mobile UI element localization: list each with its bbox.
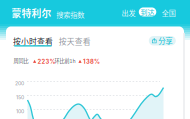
button[interactable]: 全国 (160, 8, 177, 18)
staticText: 全国 (162, 8, 176, 18)
button[interactable]: 出发 (120, 8, 137, 18)
button[interactable]: 按小时查看 (11, 34, 55, 47)
staticText: 出发 (122, 7, 136, 18)
staticText: 蒙特利尔 (11, 6, 51, 20)
staticText: 周同比 (14, 57, 29, 64)
staticText: 138% (83, 58, 100, 65)
button[interactable]: 按天查看 (57, 34, 93, 47)
button[interactable]: 到达 (139, 7, 156, 16)
staticText: 150 (16, 94, 24, 100)
button[interactable]: 分享 (149, 36, 176, 45)
staticText: 搜索指数 (56, 9, 84, 20)
staticText: 按小时查看 (13, 35, 53, 47)
staticText: 环比前1h (54, 57, 75, 64)
staticText: 100 (16, 108, 24, 114)
staticText: 223% (37, 58, 55, 65)
staticText: 到达 (141, 7, 155, 17)
staticText: 分享 (158, 35, 172, 46)
staticText: 200 (15, 80, 24, 86)
staticText: 按天查看 (59, 35, 91, 47)
